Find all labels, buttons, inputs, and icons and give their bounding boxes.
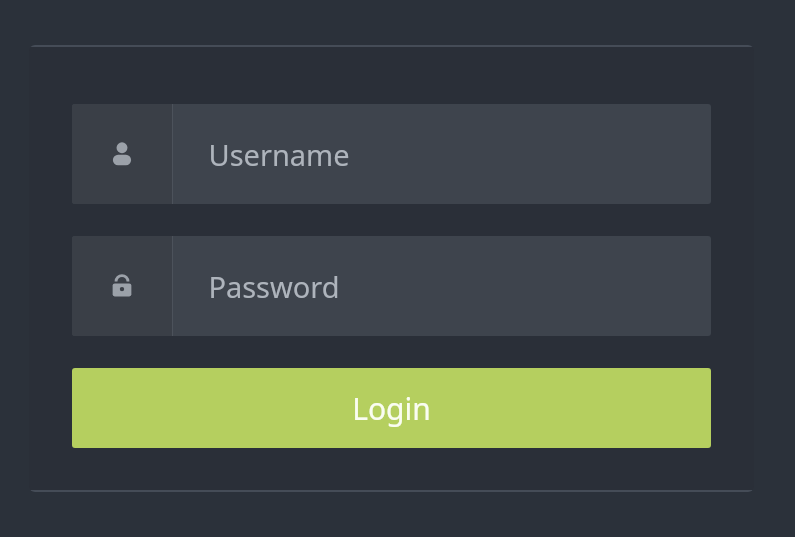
other: Username bbox=[72, 104, 172, 204]
other: Password bbox=[72, 236, 172, 336]
button[interactable]: Password bbox=[72, 236, 711, 336]
button[interactable]: Username bbox=[72, 104, 711, 204]
staticText: Login bbox=[352, 388, 431, 429]
button[interactable]: Login bbox=[72, 368, 711, 448]
staticText: Password bbox=[208, 267, 340, 306]
staticText: Username bbox=[208, 135, 350, 174]
